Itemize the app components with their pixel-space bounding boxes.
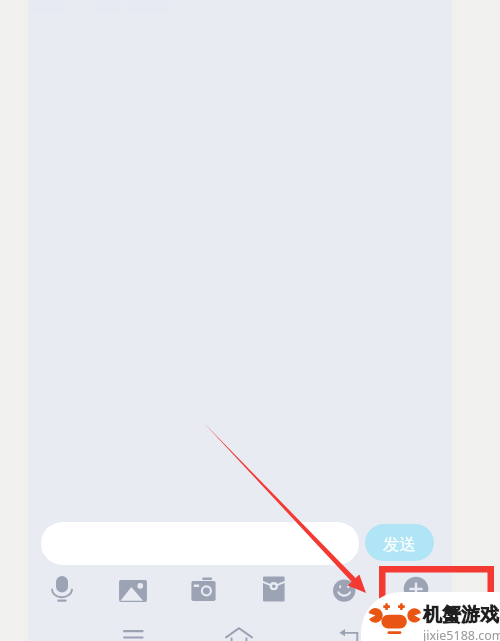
button[interactable]: 发送 [365, 524, 434, 561]
button[interactable]: Recents [115, 615, 149, 641]
button[interactable]: More options [399, 572, 433, 606]
button[interactable]: Emoji [328, 574, 362, 608]
button[interactable]: Back [331, 615, 365, 641]
button[interactable]: Message input [41, 522, 359, 565]
button[interactable]: Camera [187, 574, 221, 608]
button[interactable]: Red packet [257, 574, 291, 608]
staticText: 机蟹游戏 [423, 603, 499, 627]
staticText: jixie5188.com [423, 627, 500, 641]
button[interactable]: Photo [116, 574, 150, 608]
button[interactable]: Home [222, 615, 256, 641]
button[interactable]: Voice message [45, 574, 79, 608]
staticText: 发送 [383, 534, 416, 555]
